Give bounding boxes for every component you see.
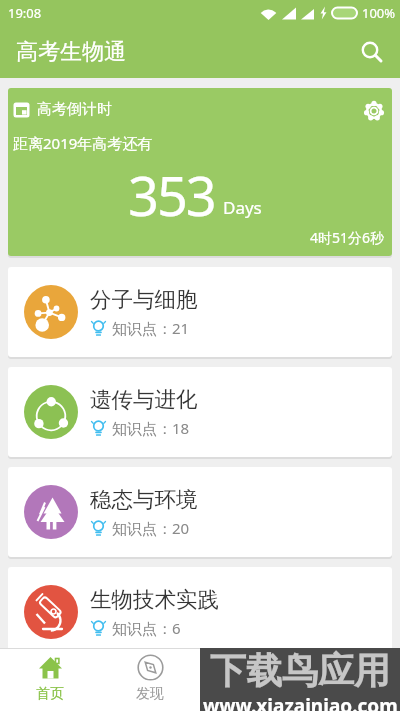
button[interactable]: 生物技术实践 — [8, 567, 392, 657]
staticText: 首页 — [36, 685, 64, 703]
button[interactable] — [358, 95, 390, 127]
staticText: 下载鸟应用 — [210, 648, 390, 693]
button[interactable]: 发现 — [100, 649, 200, 711]
staticText: Days — [223, 196, 262, 219]
staticText: www.xiazainiao.com — [203, 693, 398, 711]
button[interactable]: 分子与细胞 — [8, 267, 392, 357]
staticText: 发现 — [136, 685, 164, 703]
staticText: 距离2019年高考还有 — [13, 133, 153, 153]
staticText: 100% — [362, 4, 396, 22]
staticText: 知识点：18 — [112, 418, 190, 438]
button[interactable]: 遗传与进化 — [8, 367, 392, 457]
button[interactable]: 稳态与环境 — [8, 467, 392, 557]
staticText: 知识点：20 — [112, 518, 190, 538]
staticText: 分子与细胞 — [90, 286, 198, 313]
staticText: 知识点：21 — [112, 318, 190, 338]
staticText: 19:08 — [8, 4, 42, 22]
staticText: 生物技术实践 — [90, 586, 219, 613]
staticText: 353 — [128, 158, 215, 232]
button[interactable]: 高考倒计时 — [8, 88, 392, 256]
button[interactable] — [354, 34, 390, 70]
staticText: 高考生物通 — [16, 38, 126, 66]
button[interactable]: 首页 — [0, 649, 100, 711]
staticText: 知识点：6 — [112, 618, 181, 638]
staticText: 稳态与环境 — [90, 486, 198, 513]
staticText: 高考倒计时 — [37, 100, 112, 119]
staticText: 4时51分6秒 — [310, 228, 385, 247]
staticText: 遗传与进化 — [90, 386, 198, 413]
